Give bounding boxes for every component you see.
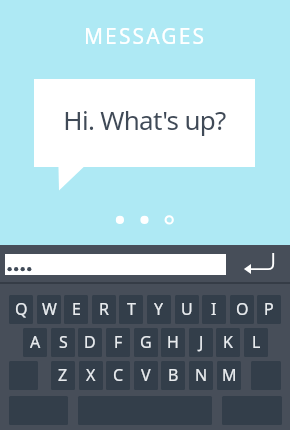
button[interactable]: D bbox=[78, 328, 102, 357]
staticText: I bbox=[211, 298, 217, 320]
button[interactable]: C bbox=[106, 361, 130, 390]
staticText: S bbox=[59, 331, 68, 353]
staticText: P bbox=[264, 298, 274, 320]
staticText: N bbox=[195, 364, 208, 386]
button[interactable]: U bbox=[175, 295, 199, 324]
button[interactable]: N bbox=[189, 361, 213, 390]
staticText: L bbox=[252, 331, 261, 353]
staticText: Z bbox=[58, 364, 68, 386]
staticText: Y bbox=[154, 298, 164, 320]
button[interactable]: Hi. What's up? bbox=[34, 79, 255, 167]
staticText: MESSAGES bbox=[0, 22, 290, 51]
button[interactable]: X bbox=[79, 361, 103, 390]
staticText: K bbox=[223, 331, 233, 353]
button[interactable]: Q bbox=[9, 295, 33, 324]
button[interactable]: H bbox=[161, 328, 185, 357]
staticText: T bbox=[127, 298, 136, 320]
staticText: G bbox=[140, 331, 152, 353]
staticText: W bbox=[42, 298, 57, 320]
staticText: A bbox=[30, 331, 41, 353]
staticText: M bbox=[222, 364, 237, 386]
button[interactable]: Send bbox=[232, 245, 290, 282]
button[interactable]: V bbox=[134, 361, 158, 390]
button[interactable]: L bbox=[244, 328, 268, 357]
staticText: X bbox=[86, 364, 96, 386]
staticText: J bbox=[199, 331, 204, 353]
button[interactable]: W bbox=[37, 295, 61, 324]
button[interactable]: J bbox=[189, 328, 213, 357]
staticText: V bbox=[141, 364, 151, 386]
button[interactable]: R bbox=[92, 295, 116, 324]
button[interactable]: I bbox=[202, 295, 226, 324]
button[interactable]: F bbox=[106, 328, 130, 357]
button[interactable]: T bbox=[119, 295, 143, 324]
button[interactable]: M bbox=[217, 361, 241, 390]
button[interactable]: O bbox=[230, 295, 254, 324]
button[interactable]: Z bbox=[51, 361, 75, 390]
staticText: O bbox=[236, 298, 249, 320]
staticText: F bbox=[114, 331, 123, 353]
button[interactable]: E bbox=[64, 295, 88, 324]
button[interactable]: A bbox=[23, 328, 47, 357]
staticText: R bbox=[99, 298, 109, 320]
button[interactable]: P bbox=[257, 295, 281, 324]
staticText: D bbox=[84, 331, 96, 353]
staticText: Hi. What's up? bbox=[63, 102, 226, 137]
staticText: H bbox=[167, 331, 179, 353]
staticText: C bbox=[113, 364, 124, 386]
button[interactable]: Y bbox=[147, 295, 171, 324]
staticText: Q bbox=[15, 298, 28, 320]
button[interactable]: K bbox=[216, 328, 240, 357]
staticText: B bbox=[168, 364, 179, 386]
staticText: E bbox=[72, 298, 81, 320]
button[interactable]: G bbox=[134, 328, 158, 357]
button[interactable]: Message input bbox=[5, 254, 226, 275]
button[interactable]: S bbox=[51, 328, 75, 357]
button[interactable]: B bbox=[161, 361, 185, 390]
staticText: U bbox=[181, 298, 193, 320]
